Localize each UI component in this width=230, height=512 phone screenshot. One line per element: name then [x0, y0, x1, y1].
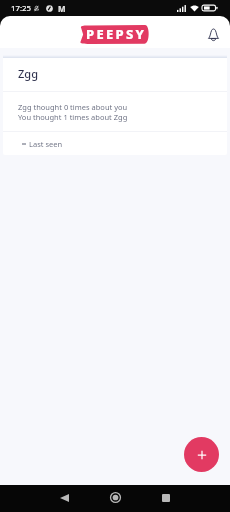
button[interactable]: Add friend: [184, 437, 219, 472]
staticText: 17:25: [11, 3, 31, 14]
button[interactable]: Back: [49, 484, 79, 511]
staticText: M: [58, 3, 66, 14]
staticText: PEEPSY: [86, 25, 147, 43]
button[interactable]: Home: [100, 484, 130, 511]
button[interactable]: PEEPSY: [80, 25, 150, 44]
button[interactable]: Notifications: [201, 22, 225, 46]
button[interactable]: Zgg: [3, 58, 227, 155]
staticText: Last seen: [29, 139, 63, 149]
staticText: Zgg: [18, 66, 38, 81]
staticText: Zgg thought 0 times about you You though…: [18, 102, 227, 122]
button[interactable]: Recent apps: [151, 484, 181, 511]
